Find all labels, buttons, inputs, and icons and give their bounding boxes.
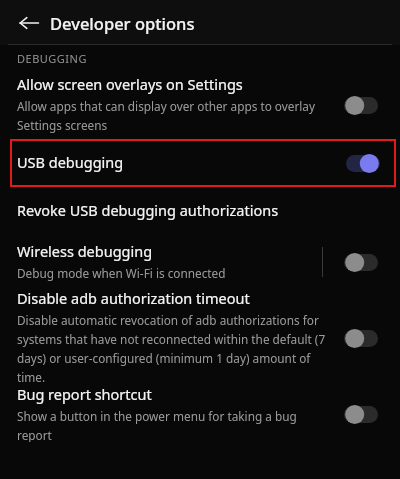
button[interactable]: Wireless debugging <box>0 234 400 290</box>
staticText: Developer options <box>50 12 195 34</box>
staticText: USB debugging <box>17 154 124 172</box>
button[interactable]: Disable adb authorization timeout <box>0 290 400 386</box>
staticText: Debug mode when Wi-Fi is connected <box>17 263 226 282</box>
staticText: DEBUGGING <box>17 51 87 66</box>
staticText: Wireless debugging <box>17 243 153 261</box>
staticText: Disable adb authorization timeout <box>17 290 250 308</box>
staticText: Bug report shortcut <box>17 386 152 404</box>
staticText: Allow apps that can display over other a… <box>17 96 315 134</box>
button[interactable]: USB debugging <box>10 139 396 187</box>
staticText: Allow screen overlays on Settings <box>17 76 243 94</box>
button[interactable]: Disable adb authorization timeout <box>339 325 383 351</box>
staticText: Show a button in the power menu for taki… <box>17 406 328 442</box>
staticText: Revoke USB debugging authorizations <box>17 202 279 220</box>
button[interactable]: Wireless debugging <box>339 249 383 275</box>
button[interactable]: Allow screen overlays on Settings <box>0 71 400 139</box>
button[interactable]: Revoke USB debugging authorizations <box>0 187 400 234</box>
button[interactable]: USB debugging <box>341 150 385 176</box>
button[interactable]: Allow screen overlays on Settings <box>339 92 383 118</box>
button[interactable]: Bug report shortcut <box>339 401 383 427</box>
button[interactable]: Bug report shortcut <box>0 386 400 442</box>
button[interactable]: Back <box>17 11 41 35</box>
staticText: Disable automatic revocation of adb auth… <box>17 310 328 386</box>
